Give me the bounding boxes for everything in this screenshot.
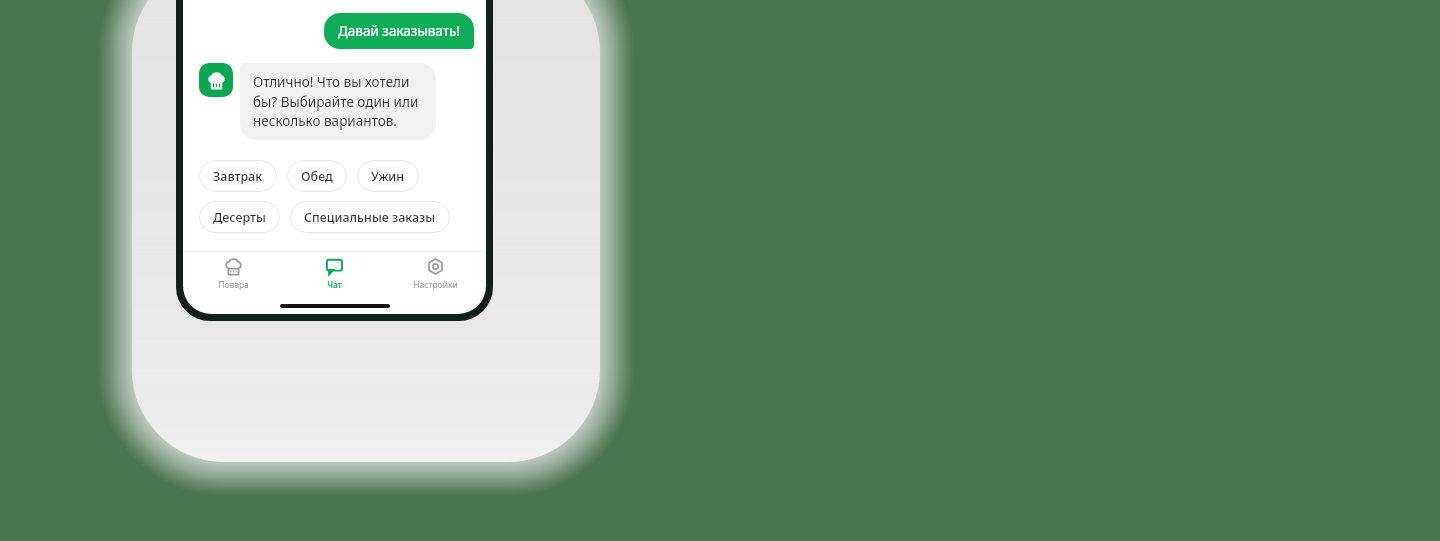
button[interactable]: Специальные заказы bbox=[290, 201, 450, 233]
staticText: Специальные заказы bbox=[304, 209, 436, 226]
button[interactable]: Давай заказывать! bbox=[324, 13, 474, 49]
button[interactable]: Отлично! Что вы хотели бы? Выбирайте оди… bbox=[240, 63, 436, 140]
button[interactable]: Обед bbox=[287, 160, 347, 192]
staticText: Завтрак bbox=[213, 168, 263, 185]
button[interactable]: Чат bbox=[284, 252, 385, 297]
button[interactable]: Повара bbox=[183, 252, 284, 297]
staticText: Чат bbox=[327, 279, 342, 291]
staticText: Десерты bbox=[213, 209, 266, 226]
button[interactable]: Завтрак bbox=[199, 160, 277, 192]
staticText: Обед bbox=[301, 168, 333, 185]
staticText: Настройки bbox=[413, 279, 458, 291]
button[interactable]: Ужин bbox=[357, 160, 419, 192]
staticText: Повара bbox=[218, 279, 249, 291]
staticText: Давай заказывать! bbox=[338, 22, 460, 40]
button[interactable]: Настройки bbox=[385, 252, 486, 297]
staticText: Ужин bbox=[371, 168, 405, 185]
button[interactable]: Десерты bbox=[199, 201, 280, 233]
staticText: Отлично! Что вы хотели бы? Выбирайте оди… bbox=[253, 73, 423, 130]
